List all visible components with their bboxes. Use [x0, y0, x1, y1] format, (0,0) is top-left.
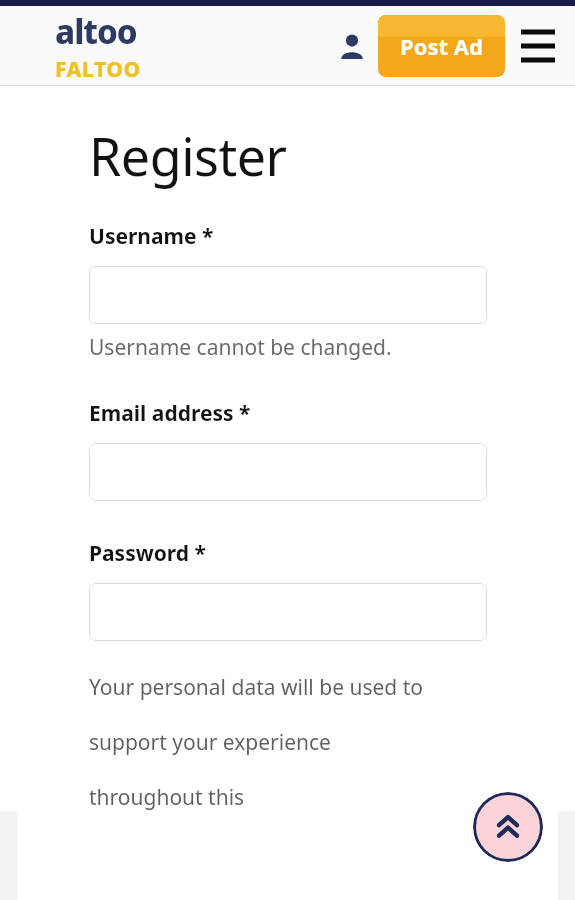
staticText: Post Ad: [400, 31, 483, 61]
staticText: FALTOO: [55, 55, 141, 84]
staticText: altoo: [55, 9, 137, 54]
button[interactable]: [89, 266, 487, 324]
staticText: Username *: [89, 222, 214, 251]
button[interactable]: [89, 443, 487, 501]
button[interactable]: Menu: [515, 23, 561, 69]
staticText: Username cannot be changed.: [89, 333, 392, 362]
staticText: Password *: [89, 539, 206, 568]
staticText: Email address *: [89, 399, 251, 428]
button[interactable]: Post Ad: [378, 15, 505, 77]
staticText: Register: [89, 120, 287, 191]
button[interactable]: Account: [332, 26, 372, 66]
button[interactable]: altoo: [55, 9, 141, 84]
button[interactable]: Scroll to top: [473, 792, 543, 862]
staticText: Your personal data will be used to suppo…: [89, 673, 449, 811]
button[interactable]: [89, 583, 487, 641]
